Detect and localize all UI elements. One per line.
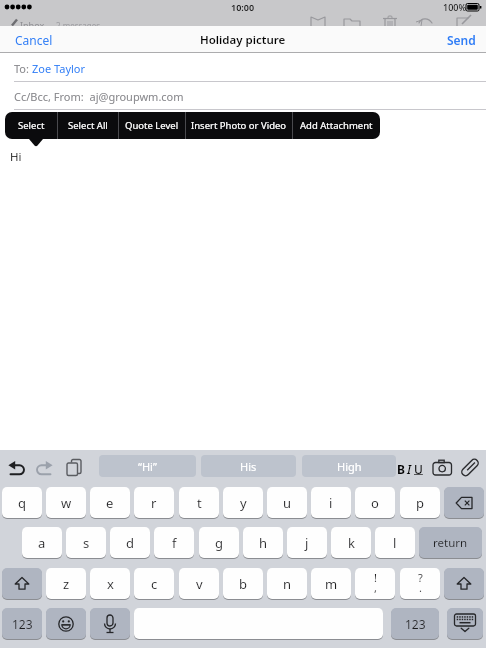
staticText: , (374, 580, 377, 595)
staticText: w (61, 494, 72, 512)
staticText: a (38, 534, 46, 552)
button[interactable]: return (419, 527, 482, 558)
button[interactable]: h (243, 527, 283, 558)
staticText: U (414, 461, 423, 477)
staticText: e (106, 494, 114, 512)
staticText: 123 (405, 616, 426, 632)
button[interactable]: t (179, 487, 219, 518)
button[interactable]: To: (0, 53, 486, 81)
button[interactable]: Select All (58, 112, 118, 139)
staticText: Insert Photo or Video (191, 119, 287, 132)
staticText: To: (14, 61, 32, 76)
button[interactable]: Quote Level (119, 112, 185, 139)
button[interactable] (2, 568, 42, 599)
button[interactable]: f (154, 527, 194, 558)
button[interactable] (444, 568, 484, 599)
button[interactable] (90, 608, 130, 639)
staticText: n (283, 575, 292, 593)
button[interactable]: d (110, 527, 150, 558)
button[interactable]: Cc/Bcc, From: aj@groupwm.com (0, 82, 486, 109)
staticText: Cancel (15, 32, 53, 48)
staticText: Select All (68, 119, 108, 132)
staticText: Send (447, 32, 476, 48)
button[interactable] (46, 608, 86, 639)
staticText: g (215, 534, 223, 552)
button[interactable] (430, 458, 455, 478)
button[interactable]: His (201, 455, 296, 477)
button[interactable]: q (2, 487, 42, 518)
staticText: Hi (10, 149, 22, 165)
staticText: f (172, 534, 177, 552)
staticText: 10:00 (231, 1, 255, 13)
button[interactable]: n (267, 568, 307, 599)
button[interactable]: Select (5, 112, 57, 139)
button[interactable]: Insert Photo or Video (186, 112, 292, 139)
button[interactable]: u (267, 487, 307, 518)
button[interactable]: z (46, 568, 86, 599)
staticText: . (419, 580, 422, 595)
button[interactable]: Cancel (15, 32, 53, 48)
staticText: q (18, 494, 26, 512)
staticText: Holiday picture (200, 32, 286, 48)
button[interactable]: j (287, 527, 327, 558)
staticText: b (239, 575, 247, 593)
button[interactable]: 123 (391, 608, 439, 639)
staticText: “Hi” (138, 459, 157, 474)
button[interactable]: High (302, 455, 396, 477)
button[interactable] (444, 487, 484, 518)
button[interactable]: ! (355, 568, 395, 599)
staticText: ! (374, 570, 377, 585)
staticText: p (416, 494, 424, 512)
staticText: Select (18, 119, 45, 132)
button[interactable]: ? (400, 568, 440, 599)
button[interactable] (459, 458, 481, 478)
button[interactable]: o (355, 487, 395, 518)
staticText: r (151, 494, 157, 512)
button[interactable]: s (66, 527, 106, 558)
staticText: c (151, 575, 158, 593)
button[interactable]: a (22, 527, 62, 558)
button[interactable]: Send (447, 32, 476, 48)
staticText: l (393, 534, 397, 552)
button[interactable]: r (134, 487, 174, 518)
staticText: t (197, 494, 202, 512)
button[interactable]: “Hi” (99, 455, 196, 477)
button[interactable]: 123 (2, 608, 42, 639)
button[interactable]: p (400, 487, 440, 518)
button[interactable]: v (179, 568, 219, 599)
staticText: s (83, 534, 90, 552)
staticText: Zoe Taylor (32, 61, 86, 76)
button[interactable] (134, 608, 383, 639)
button[interactable] (64, 458, 84, 478)
button[interactable]: x (90, 568, 130, 599)
staticText: z (63, 575, 70, 593)
staticText: 100% (443, 1, 467, 13)
button[interactable]: g (199, 527, 239, 558)
staticText: y (240, 494, 247, 512)
staticText: j (305, 534, 309, 552)
staticText: return (433, 535, 468, 551)
staticText: High (337, 459, 362, 474)
button[interactable]: Add Attachment (293, 112, 380, 139)
staticText: m (325, 575, 338, 593)
button[interactable]: B (397, 461, 423, 477)
button[interactable]: w (46, 487, 86, 518)
button[interactable] (35, 458, 55, 478)
button[interactable]: y (223, 487, 263, 518)
staticText: I (407, 461, 412, 477)
staticText: k (348, 534, 355, 552)
button[interactable] (447, 608, 483, 639)
button[interactable]: e (90, 487, 130, 518)
button[interactable]: b (223, 568, 263, 599)
button[interactable]: m (311, 568, 351, 599)
button[interactable]: l (375, 527, 415, 558)
button[interactable]: i (311, 487, 351, 518)
staticText: i (329, 494, 333, 512)
button[interactable]: k (331, 527, 371, 558)
staticText: 123 (12, 616, 33, 632)
staticText: Add Attachment (300, 119, 373, 132)
button[interactable] (6, 458, 26, 478)
staticText: B (397, 461, 405, 477)
button[interactable]: c (134, 568, 174, 599)
staticText: x (107, 575, 114, 593)
